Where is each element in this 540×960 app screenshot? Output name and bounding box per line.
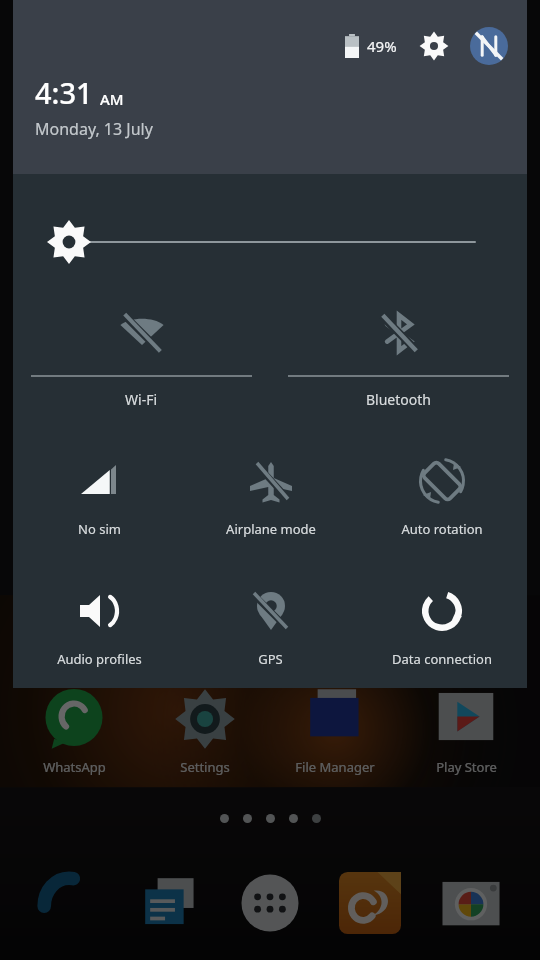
staticText: Monday, 13 July [35, 118, 153, 140]
button[interactable] [38, 872, 100, 934]
button[interactable]: Settings [419, 31, 449, 61]
button[interactable] [139, 872, 201, 934]
staticText: 49% [367, 36, 397, 56]
staticText: Settings [180, 758, 230, 776]
button[interactable]: Auto rotation [356, 446, 527, 562]
button[interactable]: Settings [149, 688, 261, 776]
staticText: File Manager [295, 758, 375, 776]
button[interactable]: WhatsApp [18, 688, 130, 776]
staticText: Play Store [436, 758, 497, 776]
button[interactable]: Airplane mode [185, 446, 356, 562]
staticText: Auto rotation [401, 520, 483, 538]
button[interactable]: Wi-Fi [13, 294, 270, 430]
staticText: Data connection [392, 650, 492, 668]
staticText: No sim [78, 520, 121, 538]
staticText: AM [100, 89, 124, 109]
button[interactable]: Brightness [13, 214, 527, 270]
button[interactable]: Audio profiles [13, 576, 185, 688]
staticText: WhatsApp [43, 758, 106, 776]
button[interactable]: Data connection [356, 576, 527, 688]
button[interactable]: File Manager [279, 688, 391, 776]
button[interactable] [440, 872, 502, 934]
button[interactable]: Play Store [410, 688, 522, 776]
button[interactable] [239, 872, 301, 934]
button[interactable]: Bluetooth [270, 294, 527, 430]
button[interactable]: No sim [13, 446, 185, 562]
staticText: 4:31 [35, 73, 93, 112]
staticText: Wi-Fi [125, 390, 158, 409]
button[interactable]: GPS [185, 576, 356, 688]
staticText: GPS [258, 650, 283, 668]
staticText: Bluetooth [366, 390, 431, 409]
staticText: Airplane mode [226, 520, 316, 538]
button[interactable]: NFC [469, 26, 509, 66]
button[interactable] [339, 872, 401, 934]
staticText: Audio profiles [57, 650, 142, 668]
